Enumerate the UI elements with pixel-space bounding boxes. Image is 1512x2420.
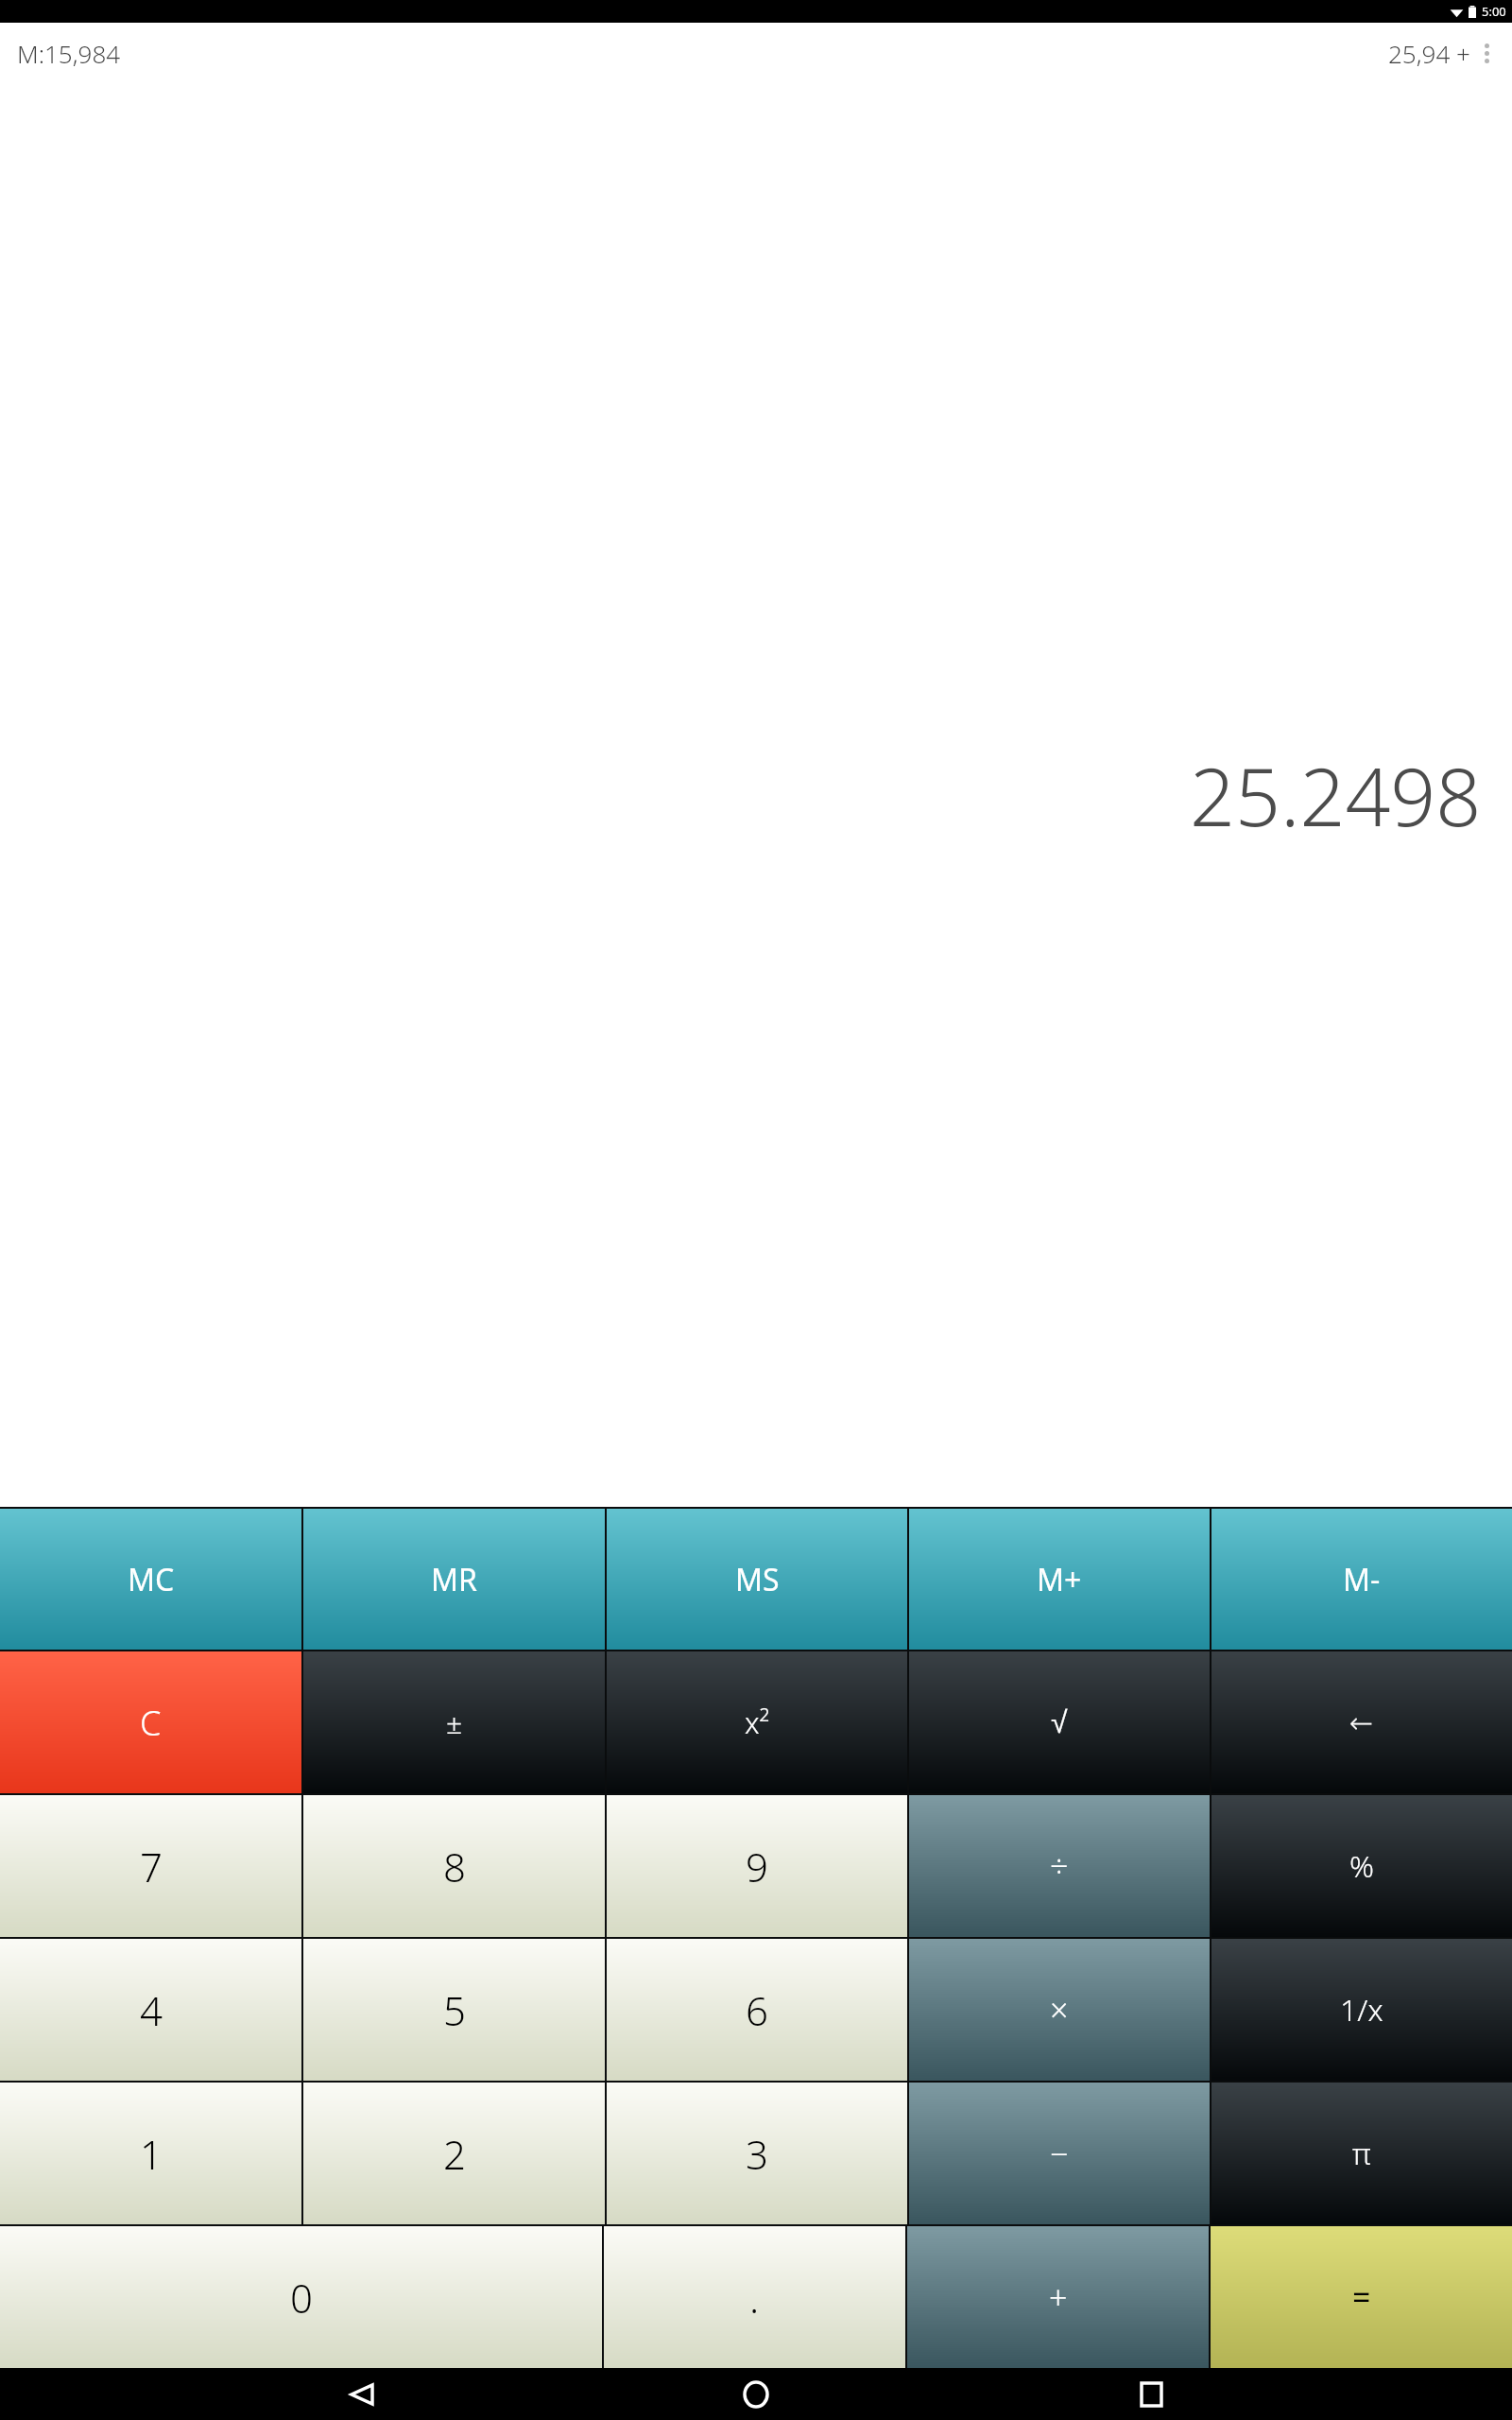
staticText: π (1352, 2133, 1371, 2174)
button[interactable]: Backspace (1211, 1651, 1512, 1793)
button[interactable]: Recents (1118, 2368, 1184, 2420)
staticText: MR (431, 1559, 477, 1600)
button[interactable]: Back (329, 2368, 395, 2420)
staticText: 1 (140, 2127, 163, 2181)
staticText: 9 (746, 1840, 768, 1893)
button[interactable]: π (1211, 2083, 1512, 2224)
button[interactable]: 9 (607, 1795, 907, 1937)
staticText: 0 (290, 2271, 313, 2325)
button[interactable]: 1 (0, 2083, 301, 2224)
staticText: ÷ (1050, 1844, 1069, 1888)
button[interactable]: Square (607, 1651, 907, 1793)
staticText: . (749, 2271, 760, 2325)
button[interactable]: Home (723, 2368, 789, 2420)
button[interactable]: 6 (607, 1939, 907, 2081)
button[interactable]: C (0, 1651, 301, 1793)
button[interactable]: Plus minus (303, 1651, 605, 1793)
staticText: 5:00 (1482, 3, 1506, 20)
staticText: 1/x (1340, 1989, 1383, 2031)
button[interactable]: × (909, 1939, 1210, 2081)
button[interactable]: . (604, 2226, 905, 2368)
staticText: √ (1051, 1705, 1068, 1739)
button[interactable]: 3 (607, 2083, 907, 2224)
button[interactable]: Plus (907, 2226, 1209, 2368)
button[interactable]: 0 (0, 2226, 602, 2368)
staticText: M- (1343, 1559, 1381, 1600)
staticText: % (1349, 1845, 1374, 1887)
button[interactable]: 2 (303, 2083, 605, 2224)
button[interactable]: MS (607, 1509, 907, 1650)
button[interactable]: Square root (909, 1651, 1210, 1793)
staticText: 3 (746, 2127, 768, 2181)
button[interactable]: 8 (303, 1795, 605, 1937)
staticText: 8 (443, 1840, 466, 1893)
button[interactable]: More options (1470, 32, 1503, 74)
button[interactable]: M+ (909, 1509, 1210, 1650)
button[interactable]: ÷ (909, 1795, 1210, 1937)
button[interactable]: 7 (0, 1795, 301, 1937)
staticText: − (1050, 2132, 1069, 2175)
button[interactable]: Equals (1211, 2226, 1512, 2368)
button[interactable]: 4 (0, 1939, 301, 2081)
button[interactable]: MC (0, 1509, 301, 1650)
staticText: = (1352, 2275, 1371, 2319)
staticText: 25,94 + (1388, 37, 1470, 70)
button[interactable]: % (1211, 1795, 1512, 1937)
button[interactable]: − (909, 2083, 1210, 2224)
staticText: M:15,984 (17, 37, 121, 70)
staticText: MC (128, 1559, 175, 1600)
staticText: 6 (746, 1983, 768, 2037)
staticText: 2 (443, 2127, 466, 2181)
staticText: M+ (1037, 1559, 1082, 1600)
button[interactable]: MR (303, 1509, 605, 1650)
staticText: C (140, 1700, 162, 1746)
staticText: x² (745, 1703, 770, 1742)
staticText: + (1049, 2275, 1068, 2319)
staticText: ± (446, 1703, 463, 1742)
button[interactable]: 5 (303, 1939, 605, 2081)
staticText: 4 (140, 1983, 163, 2037)
staticText: ← (1349, 1706, 1374, 1739)
staticText: 25.2498 (1190, 741, 1482, 849)
button[interactable]: M- (1211, 1509, 1512, 1650)
staticText: × (1050, 1988, 1069, 2031)
staticText: 7 (140, 1840, 163, 1893)
staticText: 5 (443, 1983, 466, 2037)
staticText: MS (735, 1559, 780, 1600)
button[interactable]: 1/x (1211, 1939, 1512, 2081)
